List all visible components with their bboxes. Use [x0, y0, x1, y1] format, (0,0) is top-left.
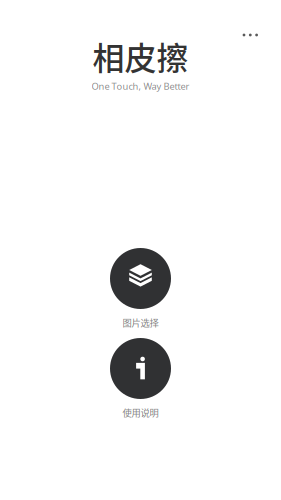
staticText: 使用说明: [122, 406, 158, 419]
staticText: 相皮擦: [92, 33, 188, 79]
button[interactable]: 使用说明: [80, 338, 200, 419]
staticText: 图片选择: [122, 316, 158, 329]
button[interactable]: 图片选择: [80, 248, 200, 329]
staticText: One Touch, Way Better: [91, 80, 189, 92]
button[interactable]: More options: [232, 23, 269, 47]
